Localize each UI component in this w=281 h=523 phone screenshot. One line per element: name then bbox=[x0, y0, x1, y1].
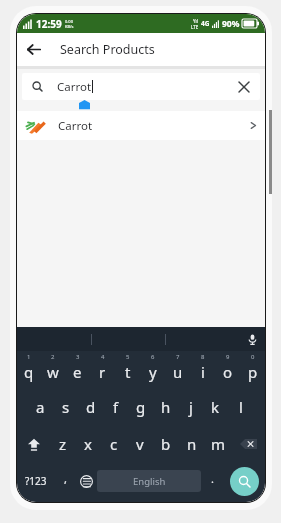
staticText: o bbox=[223, 362, 233, 382]
button[interactable]: . bbox=[201, 462, 223, 500]
button[interactable]: 1 bbox=[17, 351, 41, 388]
button[interactable]: c bbox=[101, 425, 127, 462]
staticText: 90% bbox=[222, 18, 240, 30]
button[interactable]: k bbox=[203, 388, 228, 425]
staticText: i bbox=[201, 362, 205, 382]
staticText: m bbox=[211, 434, 226, 454]
staticText: 12:59 bbox=[36, 17, 62, 31]
staticText: KB/s bbox=[65, 24, 74, 29]
staticText: n bbox=[187, 434, 197, 454]
staticText: LTE bbox=[191, 24, 199, 30]
staticText: w bbox=[47, 362, 59, 382]
staticText: v bbox=[136, 434, 144, 454]
button[interactable]: , bbox=[55, 462, 75, 500]
staticText: 0 bbox=[251, 353, 255, 361]
button[interactable]: f bbox=[103, 388, 128, 425]
staticText: 8 bbox=[201, 353, 205, 361]
staticText: b bbox=[161, 434, 171, 454]
staticText: Carrot bbox=[58, 118, 93, 134]
staticText: x bbox=[84, 434, 92, 454]
button[interactable]: n bbox=[179, 425, 205, 462]
staticText: j bbox=[189, 397, 193, 417]
button[interactable]: s bbox=[53, 388, 78, 425]
button[interactable]: Carrot bbox=[17, 111, 265, 140]
button[interactable]: ?123 bbox=[17, 462, 55, 500]
staticText: d bbox=[86, 397, 96, 417]
button[interactable]: Search bbox=[230, 467, 259, 496]
button[interactable]: Emoji bbox=[75, 462, 97, 500]
staticText: t bbox=[125, 362, 131, 382]
button[interactable]: d bbox=[78, 388, 103, 425]
button[interactable]: 7 bbox=[165, 351, 190, 388]
staticText: 9 bbox=[226, 353, 230, 361]
button[interactable]: 2 bbox=[41, 351, 65, 388]
staticText: z bbox=[59, 434, 67, 454]
button[interactable]: Voice input bbox=[239, 327, 265, 351]
staticText: 4G bbox=[201, 19, 210, 28]
staticText: 6 bbox=[151, 353, 155, 361]
button[interactable]: j bbox=[178, 388, 203, 425]
staticText: 3 bbox=[76, 353, 80, 361]
staticText: s bbox=[62, 397, 70, 417]
staticText: Search Products bbox=[60, 41, 155, 58]
staticText: English bbox=[133, 475, 166, 488]
button[interactable]: 9 bbox=[215, 351, 240, 388]
staticText: h bbox=[161, 397, 171, 417]
staticText: q bbox=[24, 362, 34, 382]
staticText: u bbox=[173, 362, 183, 382]
staticText: . bbox=[211, 471, 214, 486]
staticText: r bbox=[99, 362, 106, 382]
button[interactable]: g bbox=[128, 388, 153, 425]
button[interactable]: a bbox=[28, 388, 53, 425]
button[interactable]: Search bbox=[22, 73, 260, 100]
staticText: l bbox=[239, 397, 243, 417]
button[interactable]: 4 bbox=[90, 351, 115, 388]
staticText: a bbox=[36, 397, 45, 417]
button[interactable]: Shift bbox=[17, 425, 50, 462]
button[interactable]: Backspace bbox=[231, 425, 265, 462]
button[interactable]: English bbox=[97, 470, 201, 492]
staticText: ?123 bbox=[25, 474, 47, 488]
button[interactable]: v bbox=[127, 425, 153, 462]
staticText: 0.00 bbox=[65, 19, 73, 24]
button[interactable]: l bbox=[228, 388, 253, 425]
button[interactable]: Clear bbox=[232, 75, 256, 99]
staticText: 1 bbox=[27, 353, 31, 361]
staticText: 4 bbox=[101, 353, 105, 361]
button[interactable]: x bbox=[75, 425, 101, 462]
button[interactable]: b bbox=[153, 425, 179, 462]
staticText: g bbox=[136, 397, 146, 417]
other: Search bbox=[32, 81, 43, 92]
staticText: 7 bbox=[176, 353, 180, 361]
staticText: p bbox=[248, 362, 258, 382]
button[interactable]: z bbox=[50, 425, 75, 462]
button[interactable]: 8 bbox=[190, 351, 215, 388]
staticText: Carrot bbox=[57, 79, 92, 95]
button[interactable]: 0 bbox=[240, 351, 265, 388]
button[interactable]: 5 bbox=[115, 351, 140, 388]
staticText: 5 bbox=[126, 353, 130, 361]
button[interactable]: 3 bbox=[65, 351, 90, 388]
staticText: k bbox=[211, 397, 220, 417]
button[interactable]: m bbox=[205, 425, 231, 462]
staticText: e bbox=[73, 362, 82, 382]
staticText: 2 bbox=[51, 353, 55, 361]
button[interactable]: Back bbox=[17, 33, 50, 66]
button[interactable]: h bbox=[153, 388, 178, 425]
button[interactable]: 6 bbox=[140, 351, 165, 388]
staticText: c bbox=[110, 434, 118, 454]
staticText: y bbox=[149, 362, 157, 382]
staticText: f bbox=[113, 397, 119, 417]
staticText: , bbox=[64, 471, 67, 486]
staticText: Yıl bbox=[193, 18, 198, 24]
